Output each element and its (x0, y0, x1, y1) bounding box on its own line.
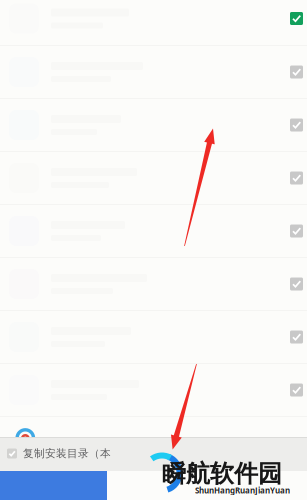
button[interactable] (0, 205, 307, 258)
button[interactable] (0, 99, 307, 152)
button[interactable] (0, 364, 307, 417)
button[interactable] (0, 46, 307, 99)
button[interactable] (0, 258, 307, 311)
staticText: 复制安装目录（本 (23, 447, 111, 460)
button[interactable] (0, 311, 307, 364)
button[interactable] (0, 152, 307, 205)
staticText: ShunHangRuanJianYuan (195, 485, 290, 496)
button[interactable] (0, 0, 307, 46)
staticText: 瞬航软件园 (162, 459, 282, 488)
button[interactable]: 复制安装目录（本 (0, 437, 307, 471)
